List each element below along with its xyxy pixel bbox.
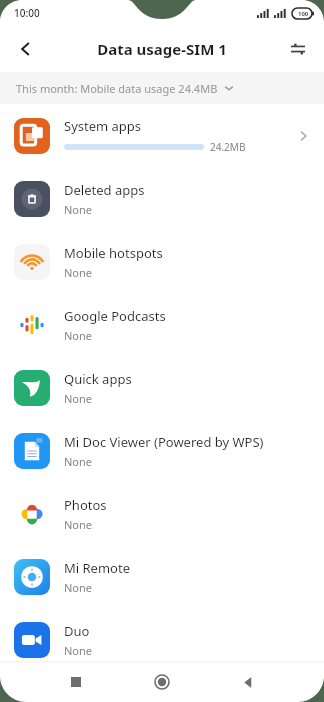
staticText: None (64, 391, 93, 406)
staticText: Mobile hotspots (64, 244, 163, 262)
button[interactable]: Google Podcasts (0, 293, 324, 356)
staticText: Mi Remote (64, 559, 130, 577)
button[interactable]: Back (8, 31, 44, 67)
button[interactable]: This month: Mobile data usage 24.4MB (0, 72, 324, 104)
button[interactable]: Back (232, 666, 264, 698)
staticText: Data usage-SIM 1 (97, 39, 227, 59)
staticText: None (64, 328, 93, 343)
staticText: None (64, 265, 93, 280)
staticText: None (64, 454, 93, 469)
staticText: This month: Mobile data usage 24.4MB (16, 81, 218, 96)
staticText: None (64, 202, 93, 217)
button[interactable]: Recents (60, 666, 92, 698)
button[interactable]: Sort (280, 31, 316, 67)
staticText: Mi Doc Viewer (Powered by WPS) (64, 433, 264, 451)
button[interactable]: Mobile hotspots (0, 230, 324, 293)
staticText: 24.2MB (210, 140, 246, 154)
staticText: None (64, 517, 93, 532)
button[interactable]: Quick apps (0, 356, 324, 419)
staticText: Quick apps (64, 370, 132, 388)
staticText: Photos (64, 496, 107, 514)
staticText: Deleted apps (64, 181, 145, 199)
staticText: 100 (298, 10, 309, 18)
button[interactable]: Photos (0, 482, 324, 545)
button[interactable]: Deleted apps (0, 167, 324, 230)
staticText: Duo (64, 622, 90, 640)
button[interactable]: System apps (0, 104, 324, 167)
staticText: System apps (64, 117, 142, 135)
staticText: Google Podcasts (64, 307, 166, 325)
staticText: None (64, 643, 93, 658)
button[interactable]: Mi Remote (0, 545, 324, 608)
staticText: 10:00 (14, 6, 40, 20)
button[interactable]: Mi Doc Viewer (Powered by WPS) (0, 419, 324, 482)
staticText: None (64, 580, 93, 595)
button[interactable]: Duo (0, 608, 324, 671)
button[interactable]: Home (146, 666, 178, 698)
